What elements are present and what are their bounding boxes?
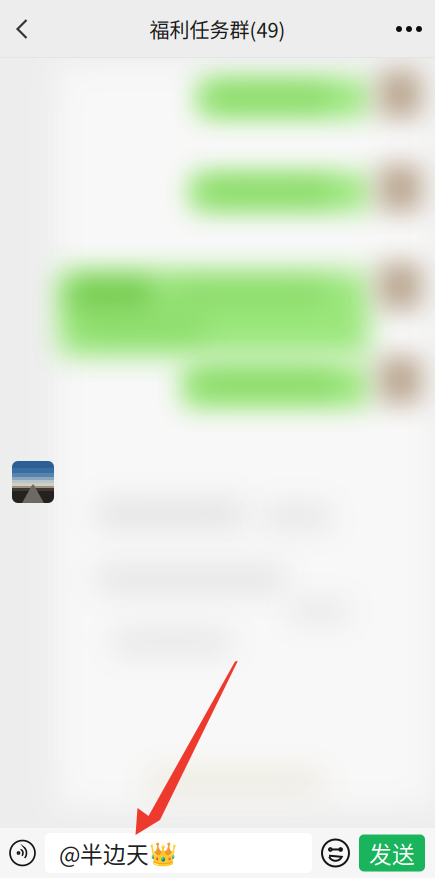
staticText: 发送 — [369, 837, 415, 869]
button[interactable]: Back — [0, 0, 44, 58]
staticText: @半边天👑 — [59, 837, 177, 869]
button[interactable]: @半边天👑 — [45, 833, 312, 873]
button[interactable]: 发送 — [359, 834, 425, 871]
button[interactable]: Voice message — [0, 828, 45, 878]
button[interactable]: Emoji keyboard — [312, 828, 359, 878]
staticText: 福利任务群(49) — [149, 14, 285, 43]
button[interactable]: More options — [383, 0, 435, 58]
